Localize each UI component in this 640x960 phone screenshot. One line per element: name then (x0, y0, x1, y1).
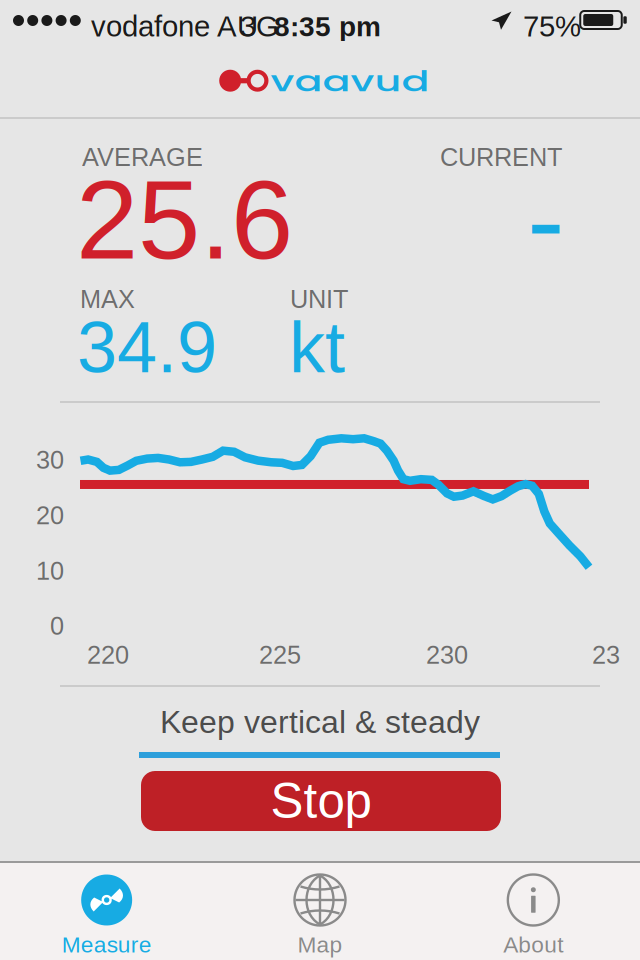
staticText: CURRENT (440, 143, 562, 171)
staticText: 0 (50, 612, 64, 640)
staticText: Map (297, 932, 342, 957)
staticText: Measure (62, 932, 152, 957)
staticText: 8:35 pm (274, 11, 381, 42)
staticText: UNIT (290, 285, 348, 313)
staticText: 30 (36, 446, 64, 474)
staticText: 225 (259, 641, 301, 669)
staticText: 75% (523, 10, 581, 43)
staticText: 3G (240, 10, 279, 43)
staticText: MAX (80, 285, 135, 313)
button[interactable]: Stop (141, 771, 501, 831)
staticText: About (503, 932, 563, 957)
staticText: - (527, 157, 564, 282)
staticText: 230 (426, 641, 468, 669)
staticText: 10 (36, 557, 64, 585)
staticText: AVERAGE (82, 143, 203, 171)
staticText: Keep vertical & steady (160, 704, 480, 740)
button[interactable]: About (427, 861, 640, 960)
staticText: 34.9 (77, 307, 217, 387)
button[interactable]: Measure (0, 861, 213, 960)
staticText: vaavud (270, 52, 429, 110)
staticText: vodafone AU (91, 10, 258, 43)
staticText: kt (289, 307, 345, 387)
staticText: 20 (36, 501, 64, 530)
staticText: 220 (87, 641, 129, 669)
staticText: Stop (270, 773, 371, 828)
staticText: 25.6 (76, 157, 293, 282)
staticText: 23 (592, 641, 620, 669)
button[interactable]: Map (213, 861, 427, 960)
